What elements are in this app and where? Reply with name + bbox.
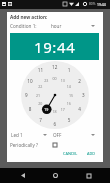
staticText: 19:44 [34,37,76,57]
staticText: Periodically ? [10,142,38,148]
staticText: OFF [53,132,62,138]
staticText: 80% [89,2,96,6]
button[interactable]: Home [48,168,63,183]
button[interactable]: Led 1 [10,129,53,140]
staticText: Add new action: [10,14,48,20]
staticText: CANCEL [63,151,78,156]
staticText: Led 1 [11,132,23,138]
button[interactable]: Recents [81,168,96,183]
staticText: 19:44 [97,2,106,7]
staticText: Condition 1: [10,23,37,29]
staticText: hour [51,23,62,29]
button[interactable]: Back [15,168,30,183]
button[interactable]: CANCEL [60,148,80,159]
button[interactable]: ADD [84,148,99,159]
staticText: ADD [87,151,96,156]
button[interactable]: OFF [52,129,101,140]
button[interactable]: Periodically checkbox [50,140,59,149]
button[interactable]: hour [47,20,101,31]
